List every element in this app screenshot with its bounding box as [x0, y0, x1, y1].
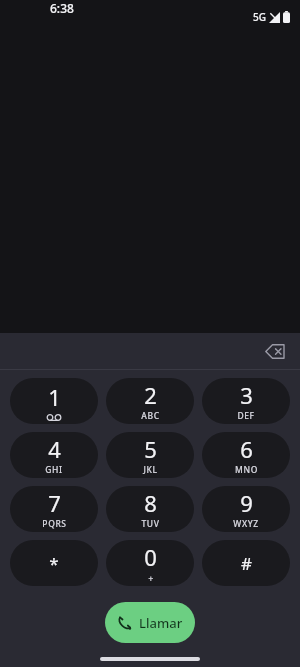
button[interactable]: 5	[106, 432, 194, 478]
staticText: DEF	[237, 410, 255, 422]
button[interactable]: #	[202, 540, 290, 586]
button[interactable]: 8	[106, 486, 194, 532]
staticText: MNO	[235, 464, 258, 476]
staticText: GHI	[45, 464, 63, 476]
button[interactable]: 2	[106, 378, 194, 424]
staticText: 4	[48, 434, 61, 464]
button[interactable]: Llamar	[105, 602, 195, 643]
staticText: PQRS	[42, 518, 67, 530]
staticText: JKL	[143, 464, 158, 476]
button[interactable]: Backspace	[258, 334, 292, 368]
button[interactable]: *	[10, 540, 98, 586]
staticText: 8	[144, 488, 157, 518]
staticText: 9	[240, 488, 253, 518]
button[interactable]: 1	[10, 378, 98, 424]
staticText: 6:38	[50, 0, 74, 16]
staticText: 0	[144, 542, 157, 572]
staticText: 5	[144, 434, 157, 464]
staticText: TUV	[141, 518, 160, 530]
button[interactable]: 4	[10, 432, 98, 478]
staticText: 3	[240, 380, 253, 410]
button[interactable]: 3	[202, 378, 290, 424]
staticText: *	[49, 552, 59, 575]
staticText: +	[148, 572, 154, 584]
staticText: 6	[240, 434, 253, 464]
staticText: ABC	[141, 410, 160, 422]
staticText: #	[241, 552, 252, 575]
button[interactable]: 9	[202, 486, 290, 532]
button[interactable]: 0	[106, 540, 194, 586]
staticText: 1	[48, 382, 61, 412]
staticText: 7	[48, 488, 61, 518]
staticText: 5G	[253, 10, 266, 24]
button[interactable]: 7	[10, 486, 98, 532]
staticText: WXYZ	[233, 518, 259, 530]
button[interactable]: 6	[202, 432, 290, 478]
staticText: Llamar	[139, 614, 183, 632]
staticText: 2	[144, 380, 157, 410]
